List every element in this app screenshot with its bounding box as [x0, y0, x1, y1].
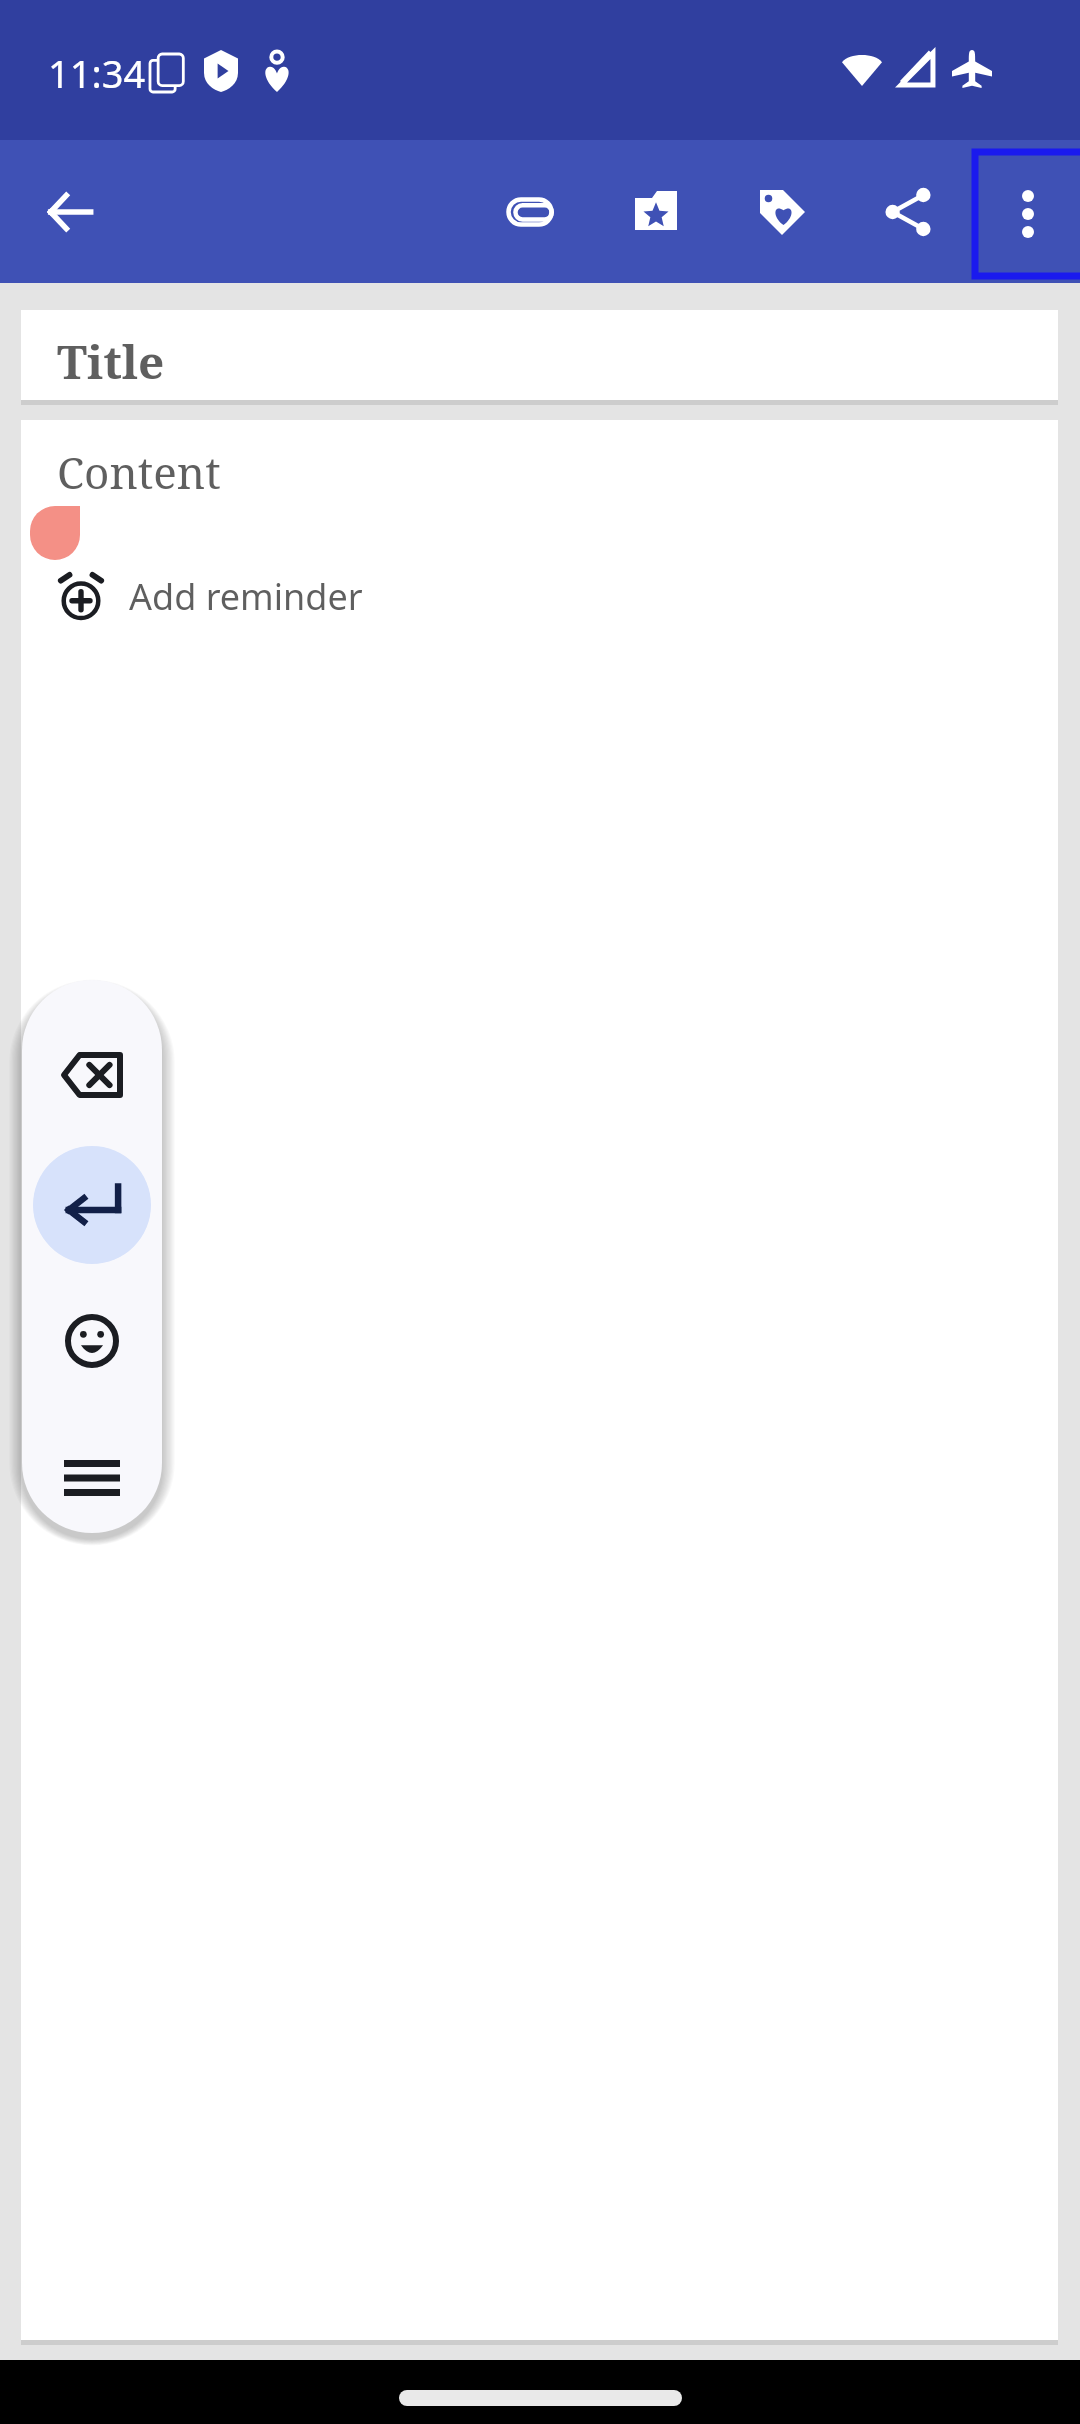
button[interactable]: Emoji: [33, 1282, 151, 1400]
button[interactable]: Labels: [730, 160, 834, 264]
button[interactable]: Add reminder: [57, 560, 363, 632]
button[interactable]: Share: [856, 160, 960, 264]
button[interactable]: More keyboard options: [33, 1422, 151, 1533]
button[interactable]: Title: [21, 310, 1058, 400]
button[interactable]: Back: [18, 160, 122, 264]
staticText: 11:34: [48, 47, 146, 99]
button[interactable]: Backspace: [33, 1016, 151, 1134]
staticText: Add reminder: [129, 572, 363, 621]
button[interactable]: More options: [973, 150, 1080, 278]
button[interactable]: Attach: [478, 160, 582, 264]
button[interactable]: Add to favourites folder: [604, 160, 708, 264]
button[interactable]: Enter: [33, 1146, 151, 1264]
button[interactable]: Content: [21, 420, 1058, 2340]
staticText: Title: [57, 330, 165, 393]
staticText: Content: [57, 442, 221, 502]
